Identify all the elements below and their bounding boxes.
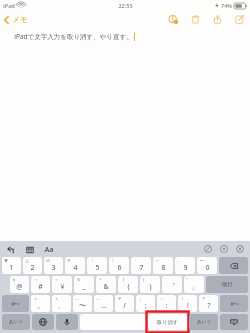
button[interactable]: ” [184, 276, 204, 293]
staticText: あいう [197, 319, 211, 325]
button[interactable]: ＊ [96, 276, 116, 293]
button[interactable]: 〕 [109, 257, 129, 274]
staticText: ＞ [54, 277, 59, 282]
staticText: 7 [139, 263, 144, 273]
button[interactable]: ー [197, 257, 217, 274]
staticText: ー [199, 258, 204, 263]
staticText: ” [186, 277, 188, 283]
staticText: #+= [11, 301, 20, 307]
button[interactable]: 〔 [87, 257, 107, 274]
staticText: & [103, 282, 109, 292]
staticText: iPadで文字入力を取り消す、やり直す。 [14, 32, 133, 41]
button[interactable]: ； [136, 295, 155, 312]
button[interactable]: Hide keyboard [234, 243, 245, 254]
button[interactable]: ￥ [115, 295, 134, 312]
staticText: # [38, 282, 43, 292]
staticText: 0 [205, 263, 210, 273]
button[interactable]: ！ [178, 295, 197, 312]
staticText: Aa [44, 244, 54, 254]
staticText: 」 [191, 282, 198, 291]
staticText: 1 [9, 263, 14, 273]
button[interactable]: Hide keyboard [220, 314, 248, 330]
button[interactable]: Dictate [56, 314, 78, 330]
button[interactable]: Switch language [32, 314, 54, 330]
staticText: ＜ [33, 277, 38, 282]
staticText: 〜 [79, 301, 86, 310]
button[interactable]: Backspace [219, 257, 248, 274]
button[interactable]: ＋ [52, 295, 71, 312]
staticText: 〕 [111, 258, 116, 263]
button[interactable]: … [73, 295, 92, 312]
button[interactable]: Clear [202, 243, 213, 254]
button[interactable]: ？ [199, 295, 218, 312]
button[interactable]: Markup [166, 12, 180, 26]
button[interactable]: Share [210, 12, 224, 26]
button[interactable]: Undo [5, 244, 16, 255]
button[interactable]: Settings [218, 243, 229, 254]
button[interactable]: ～ [153, 257, 173, 274]
button[interactable]: ∧ [10, 276, 29, 293]
staticText: ； [138, 296, 143, 301]
button[interactable]: ｛ [118, 276, 138, 293]
button[interactable]: ： [157, 295, 176, 312]
button[interactable]: #+= [2, 295, 29, 312]
staticText: 9 [183, 263, 188, 273]
staticText: 4 [73, 263, 78, 273]
button[interactable]: ＝ [31, 295, 50, 312]
button[interactable]: ‥ [175, 257, 195, 274]
staticText: ▼ [4, 258, 8, 263]
staticText: ? [207, 301, 211, 311]
staticText: … [96, 296, 100, 302]
button[interactable]: Delete [188, 12, 202, 26]
staticText: 8 [161, 263, 166, 273]
button[interactable]: ＞ [52, 276, 72, 293]
staticText: ＋ [54, 296, 59, 301]
staticText: / [123, 301, 126, 311]
button[interactable]: あいう [2, 314, 30, 330]
staticText: #+= [230, 301, 239, 307]
staticText: ∧ [12, 277, 16, 282]
staticText: ・ [133, 258, 138, 263]
staticText: 6 [117, 263, 122, 273]
staticText: 3 [51, 263, 56, 273]
staticText: 、 [58, 301, 65, 310]
staticText: ) [149, 282, 152, 292]
button[interactable]: Aa [43, 243, 55, 255]
staticText: _ [82, 282, 86, 292]
button[interactable]: #+= [220, 295, 248, 312]
staticText: ＊ [98, 277, 103, 282]
staticText: ¥ [60, 282, 65, 292]
staticText: 取り消す [157, 319, 178, 326]
button[interactable]: ∅ [44, 257, 63, 274]
staticText: ’ [164, 277, 165, 283]
button[interactable]: メモ [0, 13, 34, 26]
button[interactable]: 改行 [206, 276, 248, 293]
button[interactable]: ▼ [2, 257, 21, 274]
button[interactable]: ｝ [140, 276, 160, 293]
staticText: ∅ [46, 258, 50, 263]
staticText: ； [142, 301, 149, 310]
staticText: ( [127, 282, 130, 292]
button[interactable]: △ [23, 257, 42, 274]
staticText: @ [16, 282, 23, 292]
staticText: ￥ [117, 296, 122, 301]
button[interactable]: … [94, 295, 113, 312]
staticText: 「 [169, 282, 176, 291]
button[interactable]: 取り消す [148, 314, 187, 330]
button[interactable]: あいう [189, 314, 218, 330]
staticText: 改行 [222, 281, 233, 288]
staticText: ！ [180, 296, 185, 301]
button[interactable]: ％ [74, 276, 94, 293]
button[interactable]: Space [80, 314, 146, 330]
button[interactable]: ※ [65, 257, 85, 274]
staticText: 。 [37, 301, 44, 310]
button[interactable]: New note [232, 12, 246, 26]
button[interactable]: Table [24, 244, 35, 255]
staticText: iPad [3, 2, 15, 9]
button[interactable]: ・ [131, 257, 151, 274]
button[interactable]: ’ [162, 276, 182, 293]
staticText: 5 [95, 263, 100, 273]
button[interactable]: ＜ [31, 276, 50, 293]
staticText: △ [25, 258, 29, 263]
staticText: ｝ [142, 277, 147, 282]
